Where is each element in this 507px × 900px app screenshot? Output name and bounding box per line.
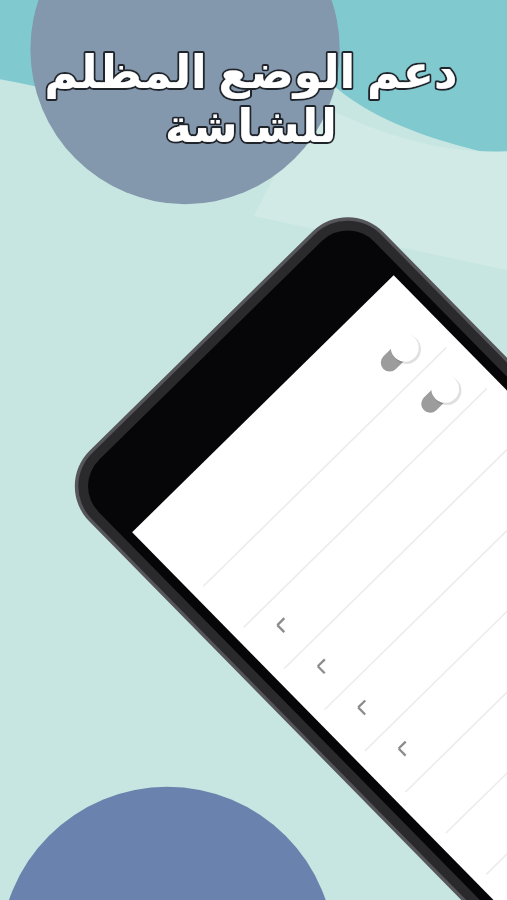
- button[interactable]: Dark mode support promo screenshot: [0, 0, 507, 900]
